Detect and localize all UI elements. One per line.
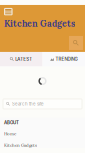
button[interactable]: Home — [4, 125, 22, 136]
staticText: Home — [4, 131, 16, 136]
button[interactable]: Search the site — [3, 99, 82, 109]
staticText: Kitchen Gadgets — [4, 142, 37, 148]
button[interactable]: Search — [69, 36, 83, 50]
button[interactable]: Menu — [0, 5, 13, 15]
staticText: LATEST — [15, 56, 32, 62]
staticText: Search the site — [12, 101, 44, 107]
button[interactable]: LATEST — [0, 52, 42, 66]
button[interactable]: TRENDING — [42, 52, 85, 66]
button[interactable]: Kitchen Gadgets — [4, 136, 43, 148]
staticText: Kitchen Gadgets — [4, 18, 75, 29]
staticText: ABOUT — [4, 120, 19, 125]
staticText: TRENDING — [55, 56, 77, 62]
